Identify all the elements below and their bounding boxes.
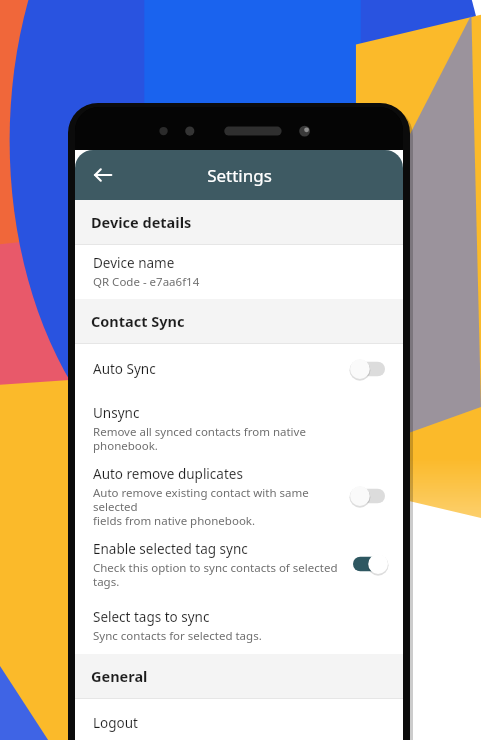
button[interactable]: Auto remove duplicates [75, 462, 403, 530]
staticText: Auto remove duplicates [93, 465, 243, 483]
staticText: Device name [93, 254, 175, 272]
staticText: Logout [93, 714, 138, 732]
staticText: Check this option to sync contacts of se… [93, 560, 338, 589]
staticText: Sync contacts for selected tags. [93, 628, 262, 644]
button[interactable]: Device name [75, 245, 403, 299]
button[interactable]: Back [83, 155, 123, 195]
button[interactable]: Unsync [75, 394, 403, 462]
staticText: Device details [91, 212, 192, 232]
button[interactable]: Toggle on [349, 551, 389, 577]
staticText: Auto remove existing contact with same s… [93, 485, 341, 528]
staticText: Unsync [93, 404, 140, 422]
staticText: Auto Sync [93, 360, 156, 378]
staticText: QR Code - e7aa6f14 [93, 274, 200, 290]
staticText: Settings [207, 164, 272, 187]
staticText: Select tags to sync [93, 608, 210, 626]
staticText: Remove all synced contacts from native p… [93, 424, 306, 453]
staticText: General [91, 666, 148, 686]
button[interactable]: Auto Sync [75, 344, 403, 394]
button[interactable]: Select tags to sync [75, 598, 403, 654]
staticText: Contact Sync [91, 311, 185, 331]
button[interactable]: Toggle off [349, 483, 389, 509]
staticText: Enable selected tag sync [93, 540, 248, 558]
button[interactable]: Toggle off [349, 356, 389, 382]
button[interactable]: Logout [75, 699, 403, 740]
button[interactable]: Enable selected tag sync [75, 530, 403, 598]
